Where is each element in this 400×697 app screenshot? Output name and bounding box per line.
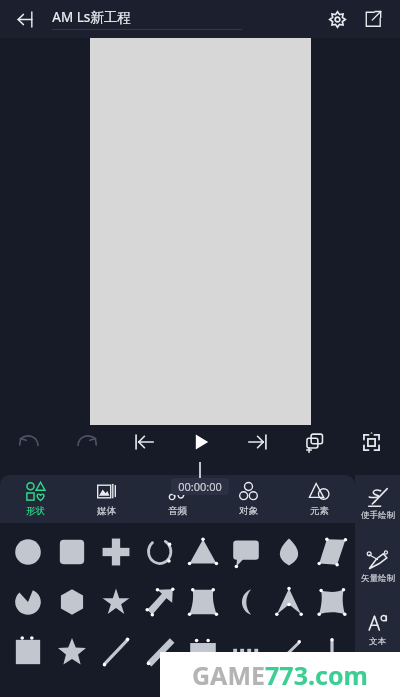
button[interactable]: Shape 23: [267, 629, 310, 675]
button[interactable]: 媒体: [71, 475, 142, 523]
button[interactable]: Shape 2: [50, 529, 94, 575]
button[interactable]: 对象: [213, 475, 284, 523]
button[interactable]: Export: [358, 4, 388, 34]
button[interactable]: Shape 3: [94, 529, 138, 575]
button[interactable]: Transform: [343, 425, 400, 459]
staticText: .com: [308, 658, 368, 692]
button[interactable]: Shape 12: [138, 579, 181, 625]
button[interactable]: Shape 4: [138, 529, 181, 575]
button[interactable]: Skip to end: [229, 425, 286, 459]
staticText: AM Ls新工程: [52, 8, 131, 26]
button[interactable]: 元素: [284, 475, 355, 523]
staticText: 对象: [239, 505, 258, 517]
button[interactable]: Duplicate: [286, 425, 343, 459]
button[interactable]: Shape 11: [94, 579, 138, 625]
button[interactable]: 使手绘制: [355, 483, 400, 524]
button[interactable]: Shape 8: [310, 529, 353, 575]
staticText: 形状: [26, 505, 45, 517]
button[interactable]: Shape 17: [6, 629, 50, 675]
button[interactable]: Settings: [322, 4, 352, 34]
button[interactable]: 文本: [355, 609, 400, 650]
button[interactable]: Back: [12, 5, 40, 33]
button[interactable]: Shape 10: [50, 579, 94, 625]
button[interactable]: Skip to start: [115, 425, 172, 459]
button[interactable]: Shape 6: [224, 529, 267, 575]
button[interactable]: Shape 20: [138, 629, 181, 675]
button[interactable]: Shape 15: [267, 579, 310, 625]
button[interactable]: Shape 7: [267, 529, 310, 575]
button[interactable]: 矢量绘制: [355, 546, 400, 587]
button[interactable]: Shape 13: [181, 579, 224, 625]
button[interactable]: Redo: [58, 425, 115, 459]
button[interactable]: Shape 24: [310, 629, 353, 675]
staticText: 文本: [369, 636, 386, 647]
staticText: 元素: [310, 505, 329, 517]
button[interactable]: Shape 9: [6, 579, 50, 625]
staticText: 媒体: [97, 505, 116, 517]
staticText: 音频: [168, 505, 187, 517]
button[interactable]: Undo: [0, 425, 58, 459]
button[interactable]: Shape 16: [310, 579, 353, 625]
button[interactable]: Shape 14: [224, 579, 267, 625]
staticText: 00:00:00: [178, 479, 222, 494]
button[interactable]: Shape 22: [224, 629, 267, 675]
staticText: 矢量绘制: [361, 573, 395, 584]
button[interactable]: 音频: [142, 475, 213, 523]
button[interactable]: 形状: [0, 475, 71, 523]
staticText: 773: [265, 658, 308, 692]
button[interactable]: Play: [172, 425, 229, 459]
button[interactable]: Shape 19: [94, 629, 138, 675]
button[interactable]: Shape 5: [181, 529, 224, 575]
button[interactable]: Shape 21: [181, 629, 224, 675]
staticText: 使手绘制: [361, 510, 395, 521]
button[interactable]: Shape 1: [6, 529, 50, 575]
staticText: GAME: [192, 658, 265, 692]
button[interactable]: Shape 18: [50, 629, 94, 675]
